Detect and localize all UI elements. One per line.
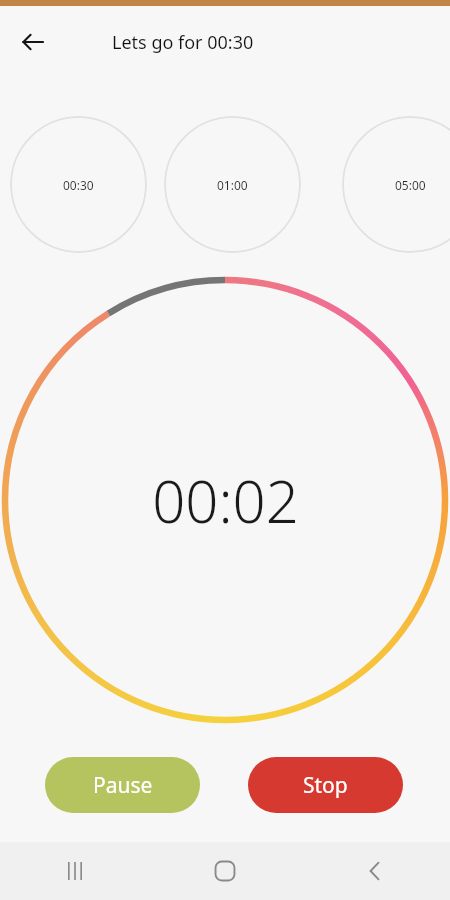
staticText: 01:00	[217, 177, 248, 193]
button[interactable]: Back	[10, 19, 56, 65]
staticText: Stop	[303, 771, 348, 800]
button[interactable]: Stop	[248, 757, 403, 813]
button[interactable]: 05:00	[342, 116, 450, 253]
staticText: 05:00	[395, 177, 426, 193]
button[interactable]: 01:00	[164, 116, 301, 253]
button[interactable]: Pause	[45, 757, 200, 813]
staticText: 00:30	[63, 177, 94, 193]
button[interactable]: 00:30	[10, 116, 147, 253]
staticText: Lets go for 00:30	[112, 30, 254, 55]
staticText: Pause	[93, 771, 153, 800]
staticText: 00:02	[152, 461, 299, 540]
button[interactable]: Back	[300, 842, 450, 900]
button[interactable]: Home	[150, 842, 300, 900]
button[interactable]: Recents	[0, 842, 150, 900]
